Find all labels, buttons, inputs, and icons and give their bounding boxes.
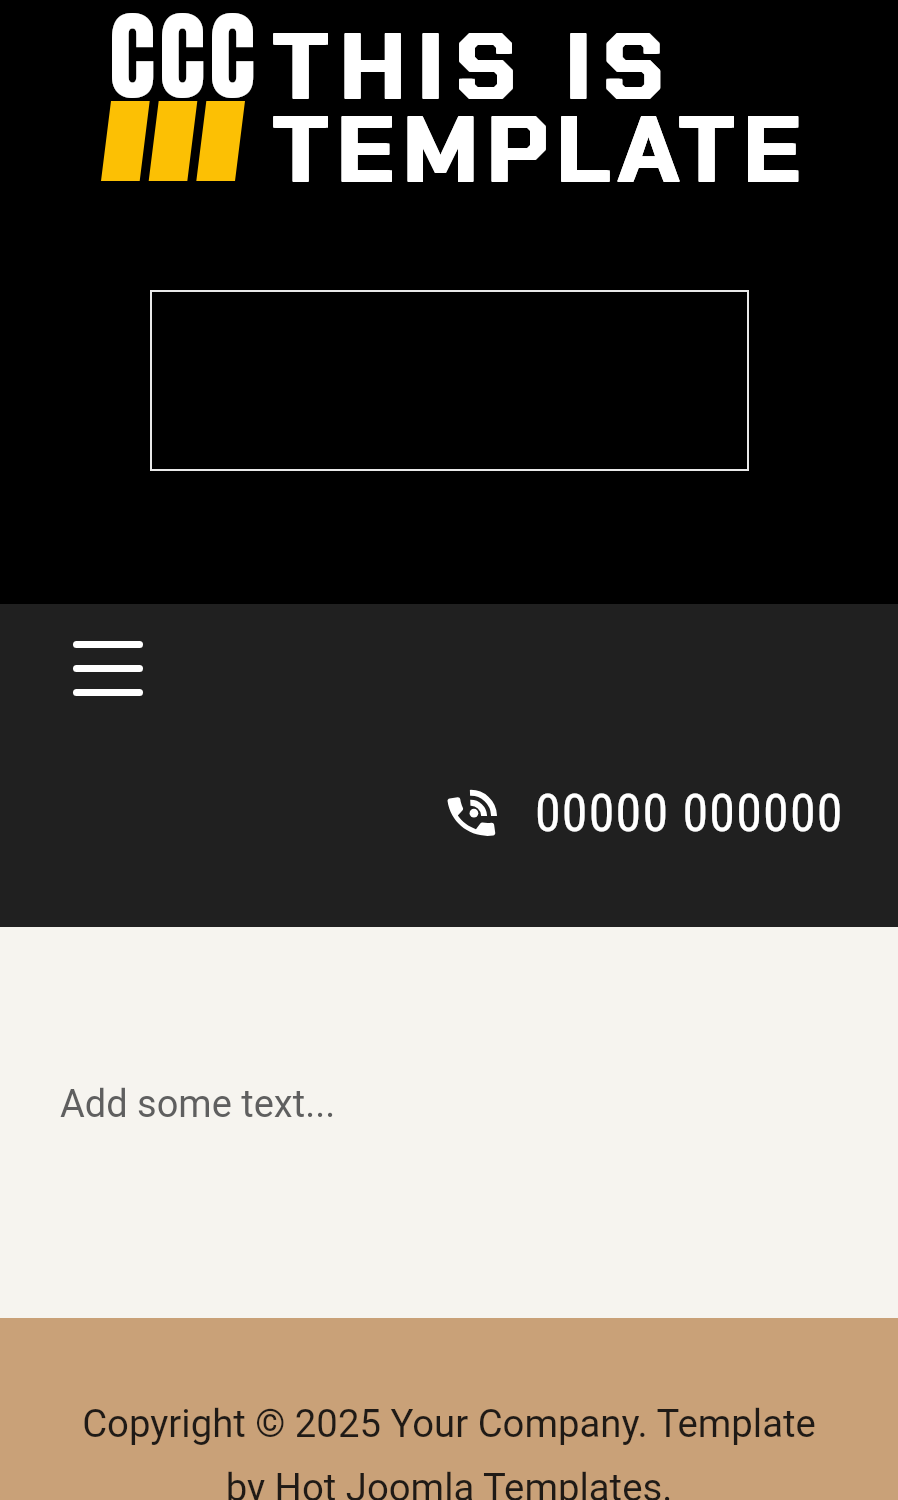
staticText: TEMPLATE: [275, 89, 811, 210]
button[interactable]: Call 00000 000000: [447, 783, 844, 844]
staticText: TEMPLATE: [273, 90, 809, 211]
button[interactable]: CCC: [100, 8, 898, 250]
staticText: Add some text...: [60, 1082, 336, 1127]
staticText: 00000 000000: [535, 783, 844, 844]
button[interactable]: Open navigation menu: [33, 600, 183, 736]
staticText: Copyright © 2025 Your Company. Template …: [72, 1401, 826, 1500]
staticText: THIS IS: [272, 6, 674, 127]
staticText: TEMPLATE: [275, 90, 811, 211]
staticText: THIS IS: [273, 7, 675, 128]
staticText: TEMPLATE: [272, 90, 808, 211]
staticText: TEMPLATE: [273, 89, 809, 210]
staticText: CCC: [109, 0, 259, 129]
staticText: THIS IS: [272, 7, 674, 128]
staticText: THIS IS: [273, 6, 675, 127]
staticText: THIS IS: [275, 6, 677, 127]
staticText: THIS IS: [275, 7, 677, 128]
staticText: TEMPLATE: [272, 89, 808, 210]
